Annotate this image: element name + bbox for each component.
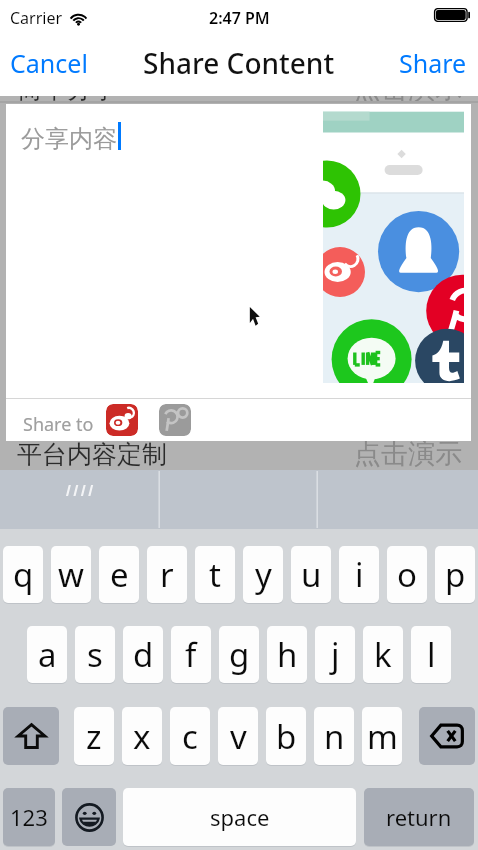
staticText: 点击演示 — [354, 437, 462, 471]
button[interactable]: b — [266, 707, 306, 765]
button[interactable]: u — [291, 546, 331, 603]
staticText: 2:47 PM — [209, 7, 270, 29]
staticText: t — [209, 552, 221, 597]
button[interactable]: r — [147, 546, 187, 603]
staticText: v — [230, 714, 247, 759]
button[interactable]: f — [171, 626, 211, 683]
staticText: Share Content — [143, 44, 335, 82]
button[interactable]: z — [74, 707, 114, 765]
button[interactable]: t — [195, 546, 235, 603]
staticText: Cancel — [10, 46, 88, 80]
button[interactable]: 简单分享 — [0, 66, 478, 112]
staticText: d — [133, 632, 154, 677]
staticText: space — [210, 802, 270, 832]
button[interactable]: 123 — [3, 788, 55, 846]
staticText: 分享内容 — [21, 124, 117, 154]
staticText: p — [445, 552, 466, 597]
staticText: o — [397, 552, 417, 597]
button[interactable]: Cancel — [0, 36, 98, 90]
button[interactable]: Share to Weibo — [106, 404, 138, 436]
button[interactable]: m — [362, 707, 402, 765]
button[interactable]: k — [363, 626, 403, 683]
staticText: 简单分享 — [17, 74, 117, 105]
staticText: 123 — [10, 802, 48, 832]
staticText: b — [276, 714, 297, 759]
button[interactable]: x — [122, 707, 162, 765]
staticText: y — [255, 552, 272, 597]
staticText: 点击演示 — [354, 72, 462, 106]
button[interactable]: a — [27, 626, 67, 683]
button[interactable]: Share — [388, 36, 478, 90]
button[interactable]: w — [51, 546, 91, 603]
staticText: e — [110, 552, 129, 597]
button[interactable]: q — [3, 546, 43, 603]
staticText: j — [331, 632, 340, 677]
staticText: Share — [399, 46, 467, 80]
staticText: r — [160, 552, 174, 597]
button[interactable]: Backspace — [419, 707, 475, 765]
button[interactable]: Shift — [3, 707, 59, 765]
button[interactable]: space — [123, 788, 356, 846]
button[interactable]: e — [99, 546, 139, 603]
button[interactable]: g — [219, 626, 259, 683]
staticText: c — [182, 714, 198, 759]
button[interactable]: n — [314, 707, 354, 765]
button[interactable]: i — [339, 546, 379, 603]
staticText: x — [133, 714, 151, 759]
staticText: k — [374, 632, 392, 677]
staticText: m — [367, 714, 398, 759]
staticText: z — [86, 714, 102, 759]
button[interactable]: h — [267, 626, 307, 683]
button[interactable]: Emoji keyboard — [62, 788, 116, 846]
staticText: return — [386, 802, 452, 832]
staticText: i — [355, 552, 364, 597]
button[interactable]: d — [123, 626, 163, 683]
button[interactable]: j — [315, 626, 355, 683]
button[interactable]: l — [411, 626, 451, 683]
staticText: l — [427, 632, 436, 677]
button[interactable]: 平台内容定制 — [0, 431, 478, 477]
button[interactable]: p — [435, 546, 475, 603]
staticText: f — [185, 632, 197, 677]
staticText: a — [38, 632, 57, 677]
staticText: n — [324, 714, 345, 759]
staticText: h — [277, 632, 298, 677]
button[interactable]: s — [75, 626, 115, 683]
staticText: Share to — [23, 412, 94, 437]
staticText: w — [58, 552, 84, 597]
staticText: s — [87, 632, 103, 677]
staticText: Carrier — [10, 7, 63, 29]
button[interactable]: return — [364, 788, 474, 846]
staticText: q — [13, 552, 34, 597]
button[interactable]: Share to Pinterest — [159, 404, 191, 436]
button[interactable]: v — [218, 707, 258, 765]
staticText: g — [229, 632, 250, 677]
button[interactable]: o — [387, 546, 427, 603]
staticText: u — [301, 552, 322, 597]
staticText: 平台内容定制 — [17, 439, 167, 470]
button[interactable]: y — [243, 546, 283, 603]
button[interactable]: c — [170, 707, 210, 765]
